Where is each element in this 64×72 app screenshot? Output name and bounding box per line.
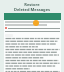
button[interactable]: Restore messages (33, 20, 39, 26)
staticText: Restore (0, 2, 64, 7)
staticText: Deleted Messages (0, 7, 64, 12)
